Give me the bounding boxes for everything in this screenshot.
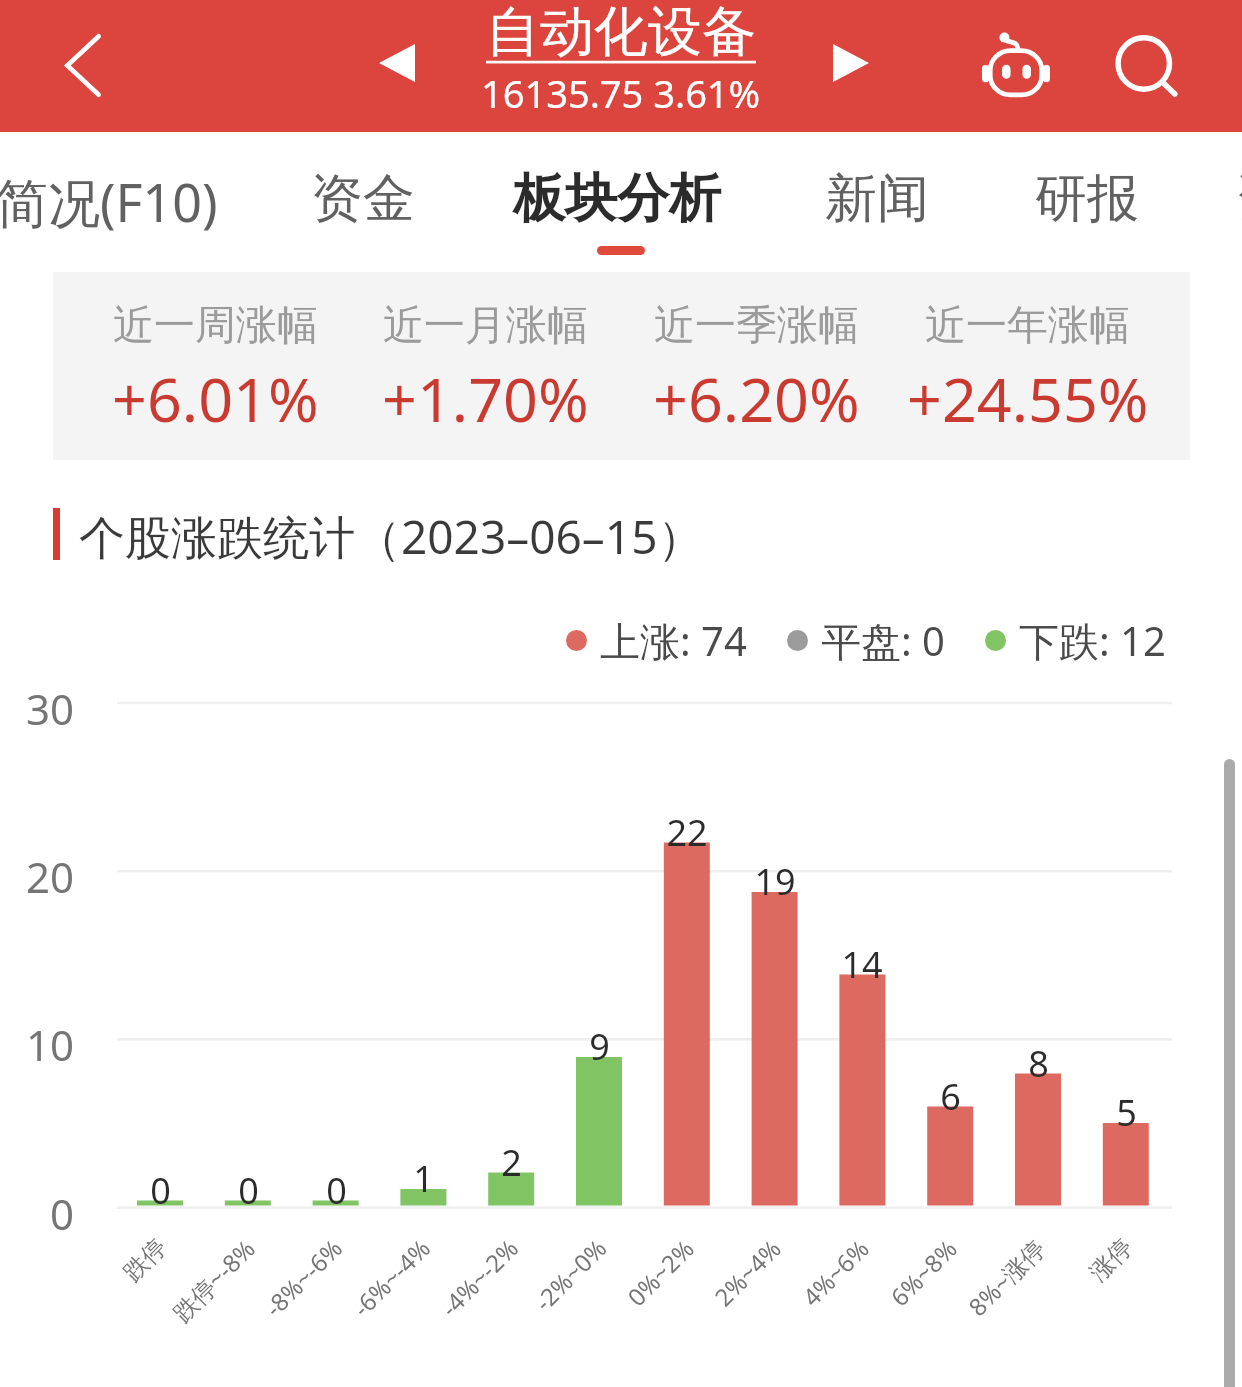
button[interactable]: 研报 [937,132,1237,262]
button[interactable]: 板块分析 [467,132,767,262]
staticText: -8%~-6% [257,1231,349,1323]
staticText: 下跌: 12 [1019,613,1166,668]
staticText: 8 [1028,1039,1049,1088]
staticText: 资金 [311,166,415,232]
staticText: 板块分析 [513,166,721,232]
staticText: 研报 [1035,166,1139,232]
staticText: 19 [754,857,796,906]
staticText: 9 [589,1022,610,1071]
staticText: 平盘: 0 [821,613,945,668]
staticText: -6%~-4% [345,1231,437,1323]
staticText: +6.20% [653,357,860,440]
button[interactable]: 平盘: 0 [787,613,945,668]
staticText: 0%~2% [620,1231,701,1313]
staticText: 自动化设备 [486,0,756,66]
staticText: 简况(F10) [0,166,218,237]
staticText: 10 [26,1016,75,1073]
staticText: +1.70% [382,357,589,440]
staticText: 上涨: 74 [600,613,747,668]
button[interactable]: 资金 [213,132,513,262]
button[interactable]: Back [42,25,123,106]
button[interactable]: 新闻 [727,132,1027,262]
staticText: 近一年涨幅 [925,300,1130,352]
staticText: 5 [1116,1088,1137,1137]
staticText: +6.01% [112,357,319,440]
button[interactable]: Previous sector [361,27,433,99]
button[interactable]: 近一月涨幅 [350,293,621,440]
staticText: 4%~6% [795,1231,876,1313]
staticText: 20 [26,848,75,905]
button[interactable]: 下跌: 12 [985,613,1166,668]
staticText: 1 [413,1154,434,1203]
button[interactable]: 近一周涨幅 [80,293,350,440]
staticText: +24.55% [907,357,1149,440]
staticText: 跌停 [118,1232,173,1287]
button[interactable]: 资 [1112,132,1242,262]
staticText: 2%~4% [707,1231,788,1313]
staticText: 近一周涨幅 [113,300,318,352]
button[interactable]: 简况(F10) [0,132,257,262]
staticText: 涨停 [1084,1232,1139,1287]
staticText: 16135.75 3.61% [481,67,761,119]
button[interactable]: 近一年涨幅 [892,293,1163,440]
staticText: 6%~8% [883,1231,964,1313]
button[interactable]: 上涨: 74 [566,613,747,668]
staticText: 近一月涨幅 [383,300,588,352]
staticText: 资 [1236,166,1242,232]
button[interactable]: 近一季涨幅 [621,293,892,440]
staticText: 0 [238,1166,259,1215]
staticText: 0 [150,1166,171,1215]
staticText: 0 [326,1166,347,1215]
staticText: 22 [666,808,708,857]
button[interactable]: Next sector [815,27,887,99]
staticText: 30 [26,680,75,737]
staticText: 14 [841,940,883,989]
staticText: 6 [940,1072,961,1121]
staticText: 8%~涨停 [961,1231,1052,1323]
staticText: 个股涨跌统计（2023–06–15） [79,505,704,563]
button[interactable]: AI assistant [966,15,1066,115]
staticText: -2%~0% [527,1231,613,1318]
staticText: 新闻 [825,166,929,232]
staticText: -4%~-2% [433,1231,525,1323]
button[interactable]: Search [1096,15,1192,111]
staticText: 0 [50,1185,75,1242]
button[interactable]: 自动化设备 [430,0,812,130]
staticText: 近一季涨幅 [654,300,859,352]
staticText: 跌停~-8% [165,1231,262,1328]
staticText: 2 [501,1138,522,1187]
